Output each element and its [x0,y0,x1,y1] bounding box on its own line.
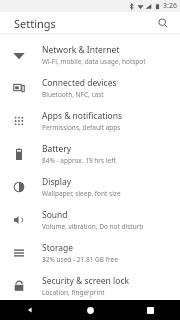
staticText: 3:26 [163,1,177,11]
staticText: 32% used - 21.81 GB free [42,255,118,264]
button[interactable]: Display [0,170,180,203]
staticText: Wallpaper, sleep, font size [42,189,121,198]
staticText: Permissions, default apps [42,123,121,132]
staticText: Bluetooth, NFC, cast [42,90,104,99]
button[interactable]: Users & accounts [0,302,180,320]
staticText: Wi-Fi, mobile, data usage, hotspot [42,57,146,66]
staticText: Sound [42,209,68,221]
button[interactable]: Network & Internet [0,38,180,71]
button[interactable]: Recent apps [120,300,180,320]
button[interactable]: Battery [0,137,180,170]
staticText: Network & Internet [42,44,120,56]
button[interactable]: Security & screen lock [0,269,180,302]
button[interactable]: Back [0,300,60,320]
button[interactable]: Connected devices [0,71,180,104]
staticText: Connected devices [42,77,117,89]
button[interactable]: Sound [0,203,180,236]
staticText: Storage [42,242,74,254]
button[interactable]: Apps & notifications [0,104,180,137]
staticText: Display [42,176,71,188]
staticText: Battery [42,143,72,155]
staticText: Location, fingerprint [42,288,105,297]
staticText: Security & screen lock [42,275,130,287]
staticText: 84% - approx. 19 hrs left [42,156,116,165]
staticText: Settings [14,16,56,31]
staticText: Apps & notifications [42,110,122,122]
button[interactable]: Search [154,14,172,32]
button[interactable]: Home [60,300,120,320]
staticText: Users & accounts [42,302,112,314]
staticText: Volume, vibration, Do not disturb [42,222,144,231]
button[interactable]: Storage [0,236,180,269]
